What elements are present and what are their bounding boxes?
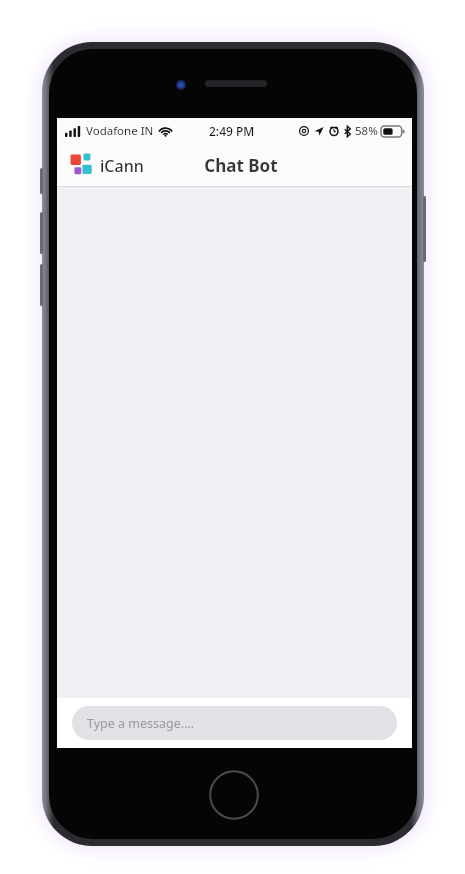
staticText: Chat Bot xyxy=(204,154,278,177)
staticText: 58% xyxy=(355,123,378,139)
staticText: 2:49 PM xyxy=(209,123,255,139)
staticText: Vodafone IN xyxy=(86,123,154,139)
button[interactable]: Type a message.... xyxy=(72,706,397,740)
staticText: iCann xyxy=(100,155,144,177)
staticText: Type a message.... xyxy=(87,715,195,732)
button[interactable]: iCann xyxy=(70,153,144,179)
